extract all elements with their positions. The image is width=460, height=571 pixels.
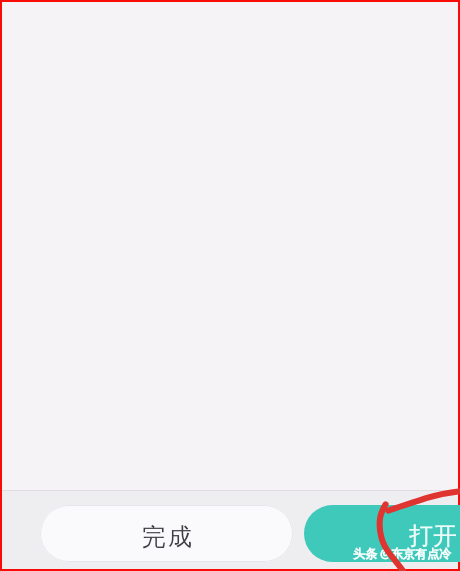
button[interactable]: 完成 [40, 505, 293, 562]
other: Annotation arrow pointing at the Open bu… [0, 0, 460, 571]
staticText: 完成 [142, 522, 194, 552]
staticText: 头条 @东京有点冷 [353, 545, 451, 561]
button[interactable]: 打开 [304, 505, 460, 562]
staticText: 打开 [409, 521, 457, 551]
